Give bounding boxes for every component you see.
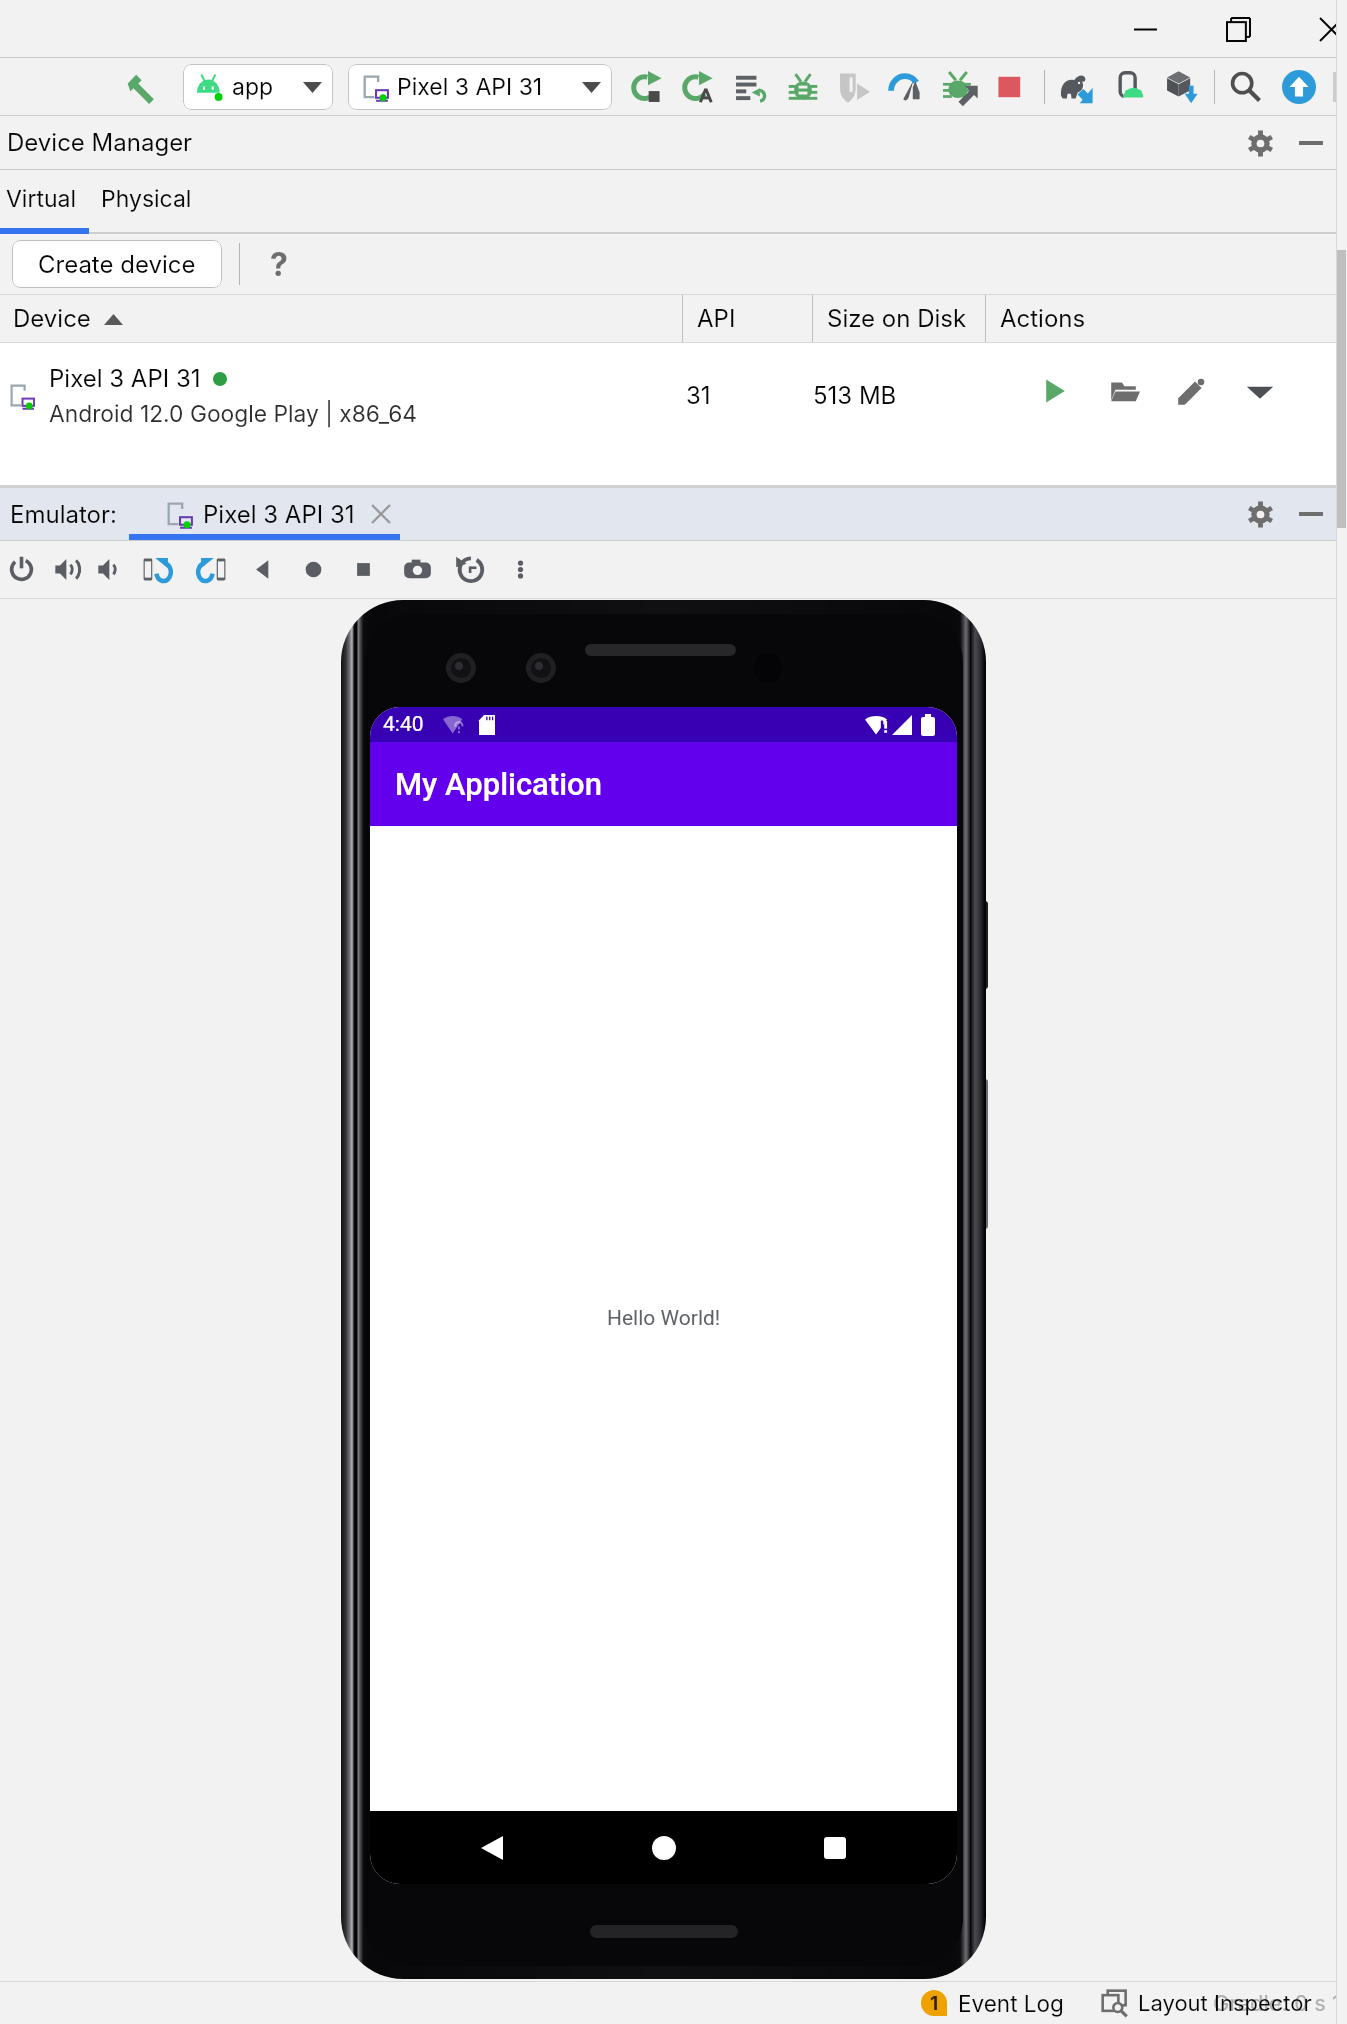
button[interactable]: Run bbox=[625, 64, 671, 110]
staticText: Pixel 3 API 31 bbox=[397, 73, 543, 101]
button[interactable]: Actions bbox=[986, 295, 1347, 342]
staticText: Hello World! bbox=[607, 1306, 721, 1331]
staticText: ? bbox=[270, 245, 288, 283]
staticText: API bbox=[697, 304, 736, 333]
button[interactable]: Apply changes bbox=[728, 64, 774, 110]
staticText: Physical bbox=[101, 185, 192, 213]
button[interactable]: API bbox=[683, 295, 812, 342]
staticText: Pixel 3 API 31 bbox=[49, 364, 201, 393]
staticText: Layout Inspector bbox=[1138, 1990, 1312, 2017]
button[interactable]: Create device bbox=[12, 240, 222, 288]
staticText: My Application bbox=[395, 766, 602, 802]
staticText: Device Manager bbox=[7, 128, 193, 157]
button[interactable]: Record screen bbox=[447, 541, 491, 598]
button[interactable]: Device bbox=[0, 295, 682, 342]
button[interactable]: Hide bbox=[1294, 126, 1328, 160]
button[interactable]: More actions bbox=[1243, 374, 1277, 408]
button[interactable]: Volume up bbox=[45, 541, 89, 598]
button[interactable]: Physical bbox=[89, 170, 203, 234]
button[interactable]: Hide bbox=[1294, 497, 1328, 531]
staticText: Android 12.0 Google Play | x86_64 bbox=[49, 400, 418, 428]
button[interactable]: Update bbox=[1276, 64, 1322, 110]
button[interactable]: Volume down bbox=[88, 541, 132, 598]
button[interactable]: Back bbox=[469, 1825, 515, 1871]
button[interactable]: app bbox=[183, 64, 333, 110]
staticText: Gradle: 0 s 14 bbox=[1213, 1990, 1347, 2017]
button[interactable]: Virtual bbox=[0, 170, 89, 234]
button[interactable]: Minimize bbox=[1115, 8, 1175, 50]
button[interactable]: Rotate right bbox=[189, 541, 233, 598]
staticText: 513 MB bbox=[813, 381, 897, 410]
button[interactable]: Power bbox=[0, 541, 43, 598]
button[interactable]: Restore bbox=[1208, 8, 1268, 50]
button[interactable]: Close bbox=[1301, 8, 1347, 50]
button[interactable]: Pixel 3 API 31 bbox=[160, 488, 361, 540]
button[interactable]: Run device bbox=[1037, 374, 1071, 408]
staticText: Device bbox=[13, 304, 91, 333]
staticText: 31 bbox=[686, 381, 711, 410]
button[interactable]: Attach debugger bbox=[832, 64, 878, 110]
button[interactable]: Debug bbox=[780, 64, 826, 110]
button[interactable]: 1 bbox=[921, 1982, 1064, 2024]
button[interactable]: Rotate left bbox=[135, 541, 179, 598]
button[interactable]: Pixel 3 API 31 bbox=[0, 343, 682, 438]
staticText: 1 bbox=[930, 1992, 939, 2015]
button[interactable]: Overview bbox=[341, 541, 385, 598]
button[interactable]: Home bbox=[291, 541, 335, 598]
button[interactable]: Recent apps bbox=[812, 1825, 858, 1871]
button[interactable]: Build bbox=[120, 64, 166, 110]
button[interactable]: Search everywhere bbox=[1223, 64, 1269, 110]
staticText: Actions bbox=[1000, 304, 1086, 333]
button[interactable]: Show on disk bbox=[1108, 374, 1142, 408]
button[interactable]: Edit bbox=[1175, 374, 1209, 408]
button[interactable]: More options bbox=[498, 541, 542, 598]
button[interactable]: Home bbox=[641, 1825, 687, 1871]
staticText: 4:40 bbox=[383, 712, 424, 737]
staticText: Create device bbox=[38, 250, 196, 279]
staticText: app bbox=[232, 73, 274, 101]
staticText: Virtual bbox=[6, 185, 77, 213]
button[interactable]: Layout Inspector bbox=[1101, 1982, 1312, 2024]
staticText: Emulator: bbox=[10, 500, 117, 529]
button[interactable]: Close tab bbox=[361, 494, 401, 534]
button[interactable]: Back bbox=[240, 541, 284, 598]
button[interactable]: Run with coverage bbox=[676, 64, 722, 110]
button[interactable]: AVD Manager bbox=[1106, 64, 1152, 110]
button[interactable]: Sync project with Gradle files bbox=[1054, 64, 1100, 110]
button[interactable]: Settings bbox=[1243, 497, 1277, 531]
button[interactable]: Take screenshot bbox=[395, 541, 439, 598]
button[interactable]: Stop bbox=[987, 64, 1033, 110]
button[interactable]: Profile with debugger bbox=[937, 64, 983, 110]
button[interactable]: Help bbox=[260, 245, 298, 283]
staticText: Event Log bbox=[958, 1990, 1064, 2017]
staticText: Pixel 3 API 31 bbox=[203, 500, 355, 529]
button[interactable]: Settings bbox=[1243, 126, 1277, 160]
button[interactable]: SDK Manager bbox=[1159, 64, 1205, 110]
button[interactable]: Pixel 3 API 31 bbox=[348, 64, 612, 110]
button[interactable]: Size on Disk bbox=[813, 295, 985, 342]
button[interactable]: Profile bbox=[883, 64, 929, 110]
staticText: Size on Disk bbox=[827, 304, 967, 333]
